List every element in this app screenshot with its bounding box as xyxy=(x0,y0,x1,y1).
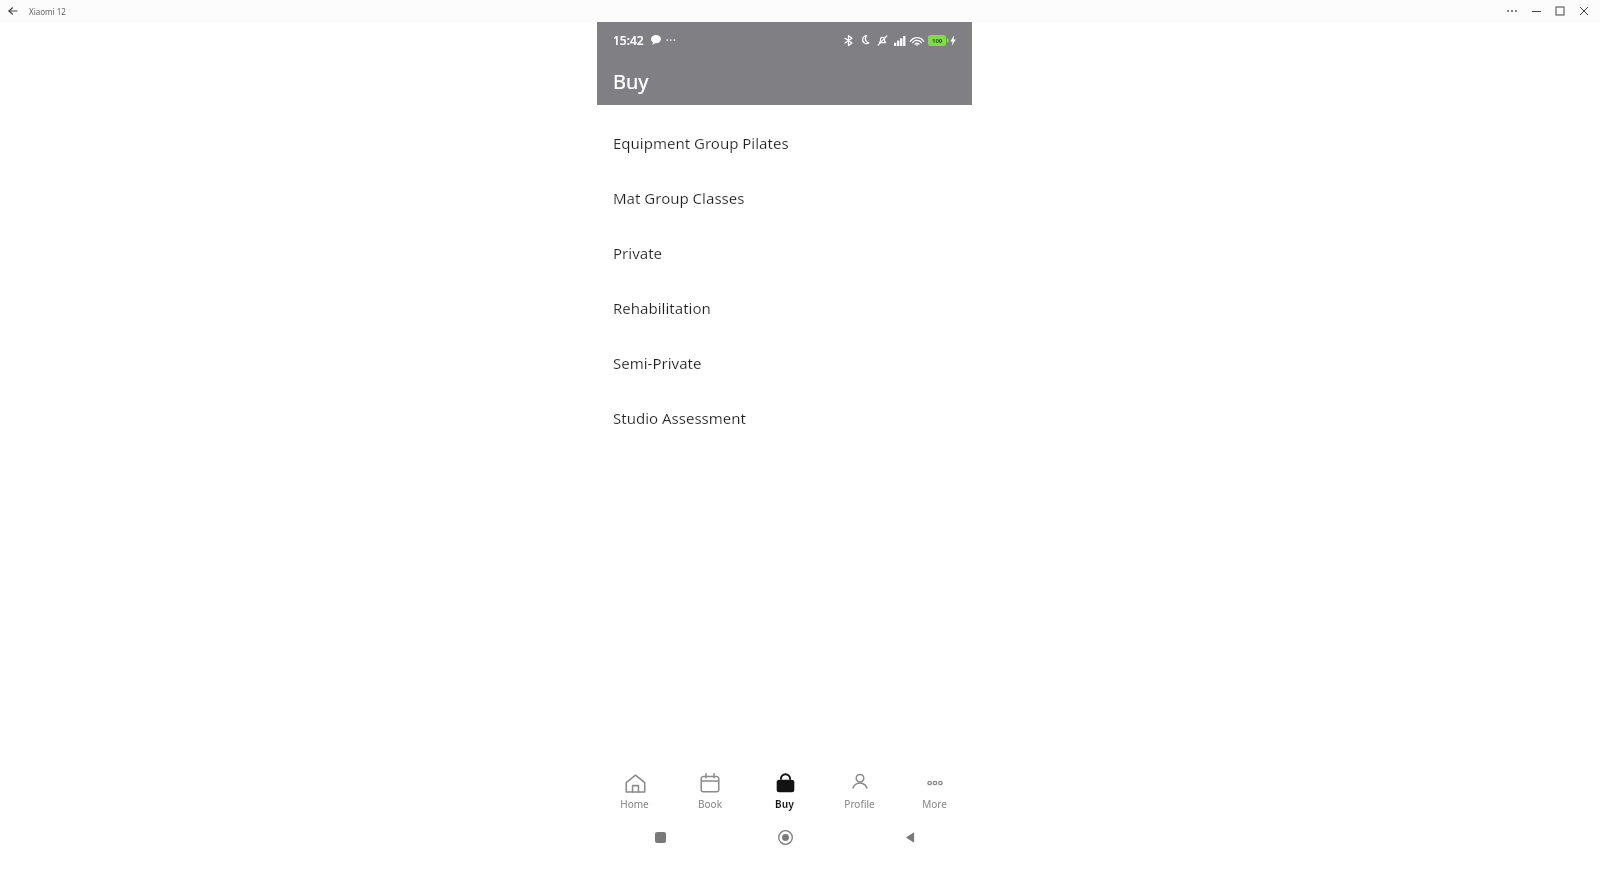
staticText: Buy xyxy=(613,68,649,95)
button[interactable]: Rehabilitation xyxy=(597,280,972,335)
button[interactable]: Buy xyxy=(747,762,822,820)
button[interactable]: Mat Group Classes xyxy=(597,170,972,225)
staticText: Semi-Private xyxy=(613,353,702,373)
button[interactable]: Home xyxy=(768,820,802,854)
staticText: Private xyxy=(613,243,663,263)
button[interactable]: Home xyxy=(597,762,672,820)
button[interactable]: Semi-Private xyxy=(597,335,972,390)
staticText: Equipment Group Pilates xyxy=(613,133,789,153)
button[interactable]: Minimize xyxy=(1524,1,1548,21)
button[interactable]: Studio Assessment xyxy=(597,390,972,445)
button[interactable]: More xyxy=(897,762,972,820)
staticText: Profile xyxy=(844,797,875,811)
staticText: 15:42 xyxy=(613,32,644,48)
staticText: Studio Assessment xyxy=(613,408,746,428)
staticText: Rehabilitation xyxy=(613,298,711,318)
staticText: Xiaomi 12 xyxy=(29,6,66,17)
staticText: Home xyxy=(620,797,649,811)
button[interactable]: Profile xyxy=(822,762,897,820)
staticText: More xyxy=(922,797,947,811)
staticText: Book xyxy=(698,797,722,811)
button[interactable]: Private xyxy=(597,225,972,280)
button[interactable]: Maximize xyxy=(1548,1,1572,21)
button[interactable]: More options xyxy=(1500,1,1524,21)
button[interactable]: Close xyxy=(1572,1,1596,21)
staticText: 100 xyxy=(932,37,943,45)
button[interactable]: Back xyxy=(6,4,20,18)
button[interactable]: Book xyxy=(672,762,747,820)
button[interactable]: Back xyxy=(893,820,927,854)
staticText: Buy xyxy=(775,797,794,811)
button[interactable]: Equipment Group Pilates xyxy=(597,115,972,170)
button[interactable]: Recent apps xyxy=(643,820,677,854)
staticText: Mat Group Classes xyxy=(613,188,745,208)
